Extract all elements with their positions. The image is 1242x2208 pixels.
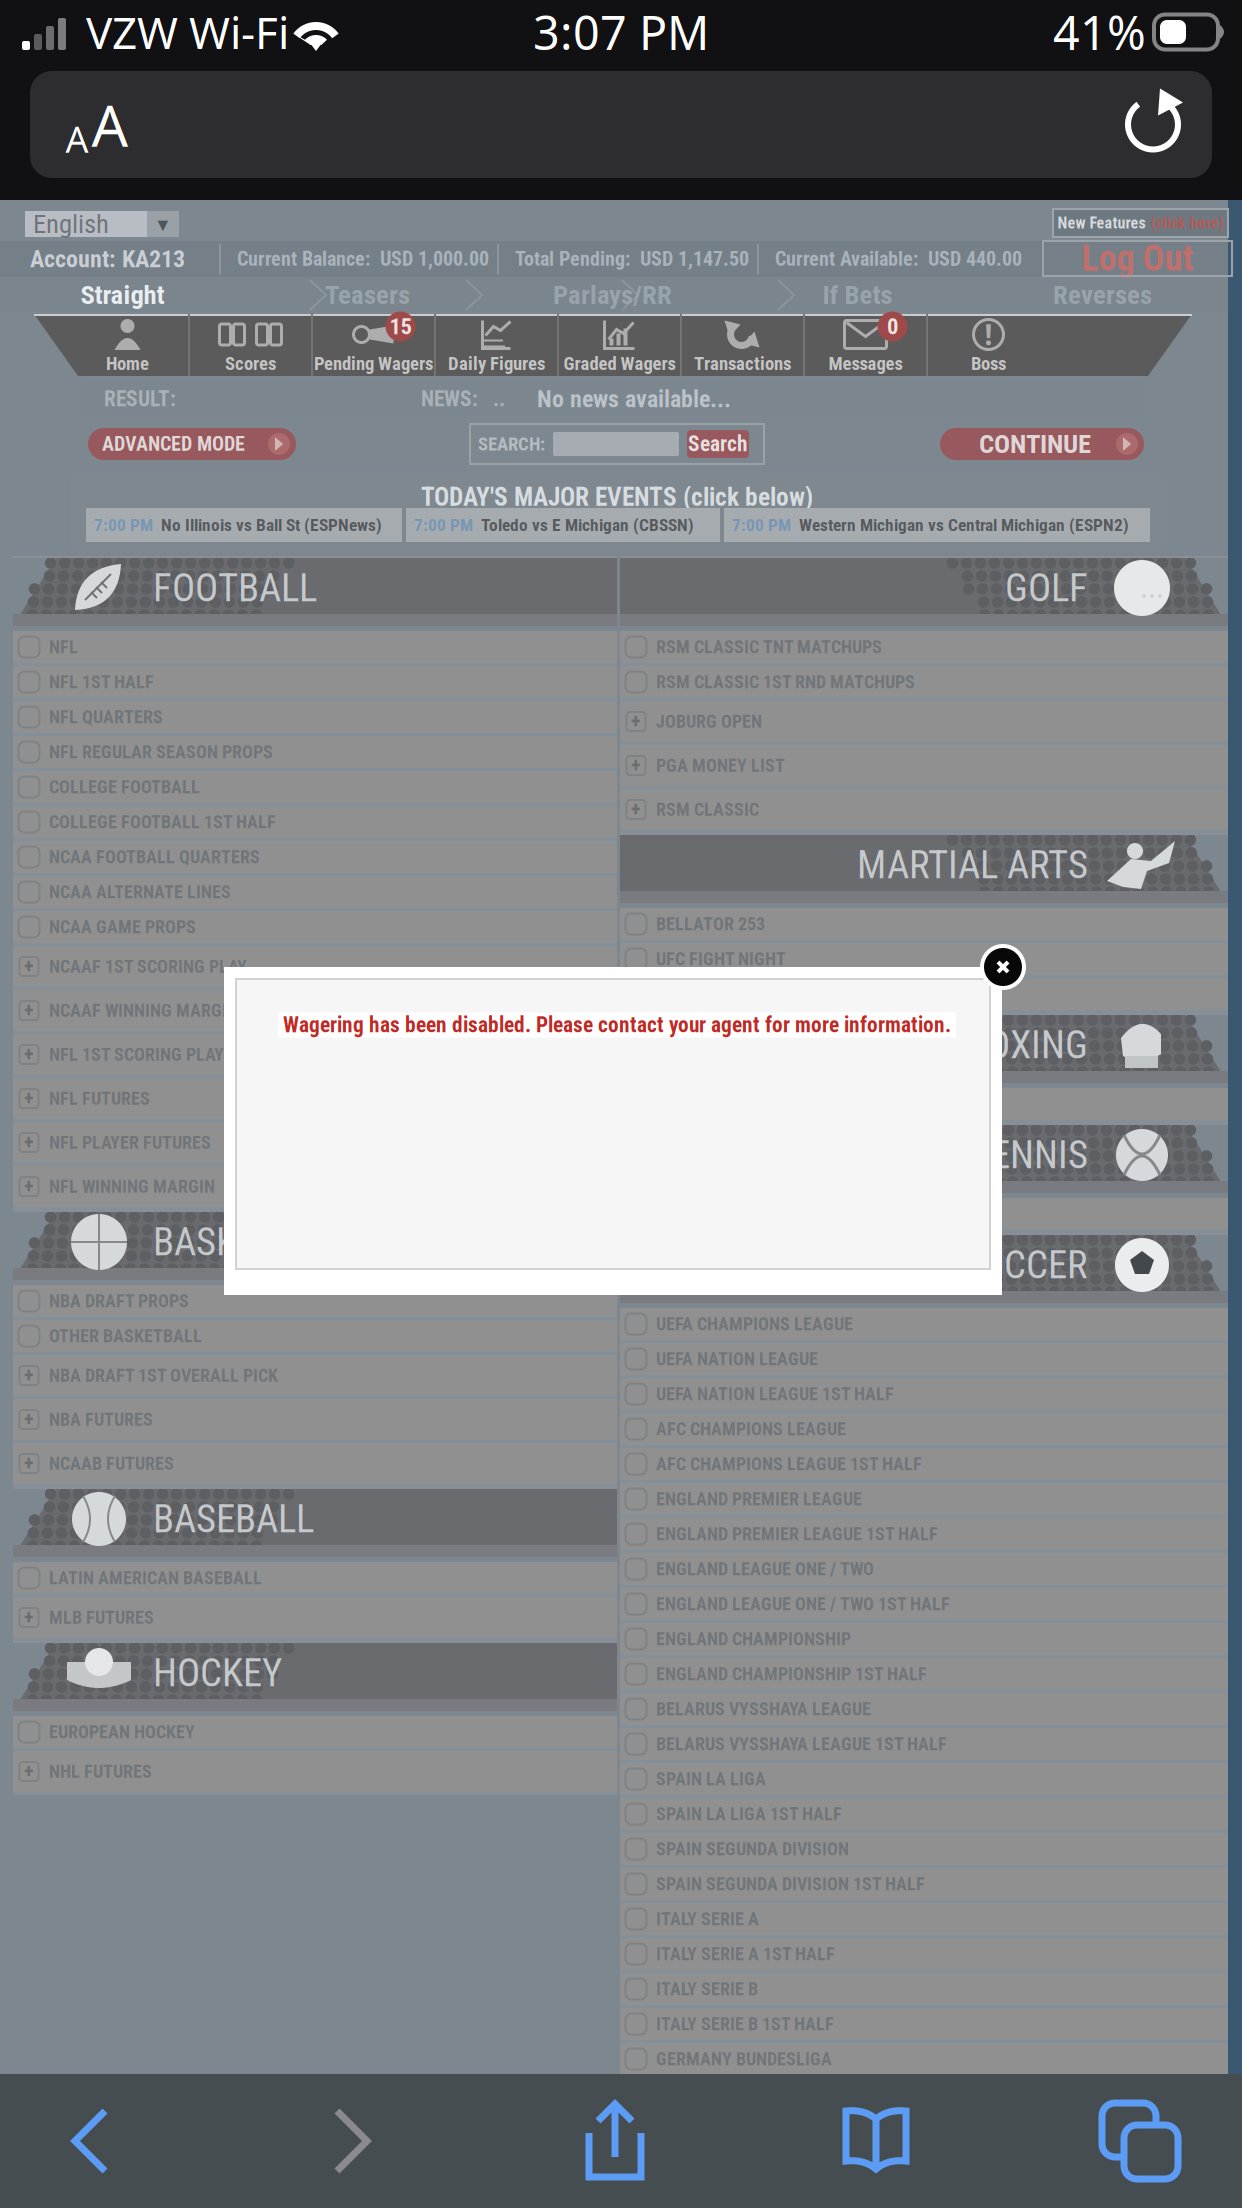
button[interactable]: LATIN AMERICAN BASEBALL <box>13 1562 617 1594</box>
staticText: NFL WINNING MARGIN <box>49 1176 215 1197</box>
button[interactable]: UEFA NATION LEAGUE 1ST HALF <box>620 1378 1228 1410</box>
button[interactable]: Share <box>545 2074 685 2208</box>
button[interactable]: ENGLAND LEAGUE ONE / TWO <box>620 1553 1228 1585</box>
button[interactable]: If Bets <box>735 278 980 312</box>
button[interactable]: NFL 1ST HALF <box>13 666 617 698</box>
button[interactable]: ENGLAND LEAGUE ONE / TWO 1ST HALF <box>620 1588 1228 1620</box>
button[interactable]: ITALY SERIE B <box>620 1973 1228 2005</box>
button[interactable]: UEFA NATION LEAGUE <box>620 1343 1228 1375</box>
staticText: Western Michigan vs Central Michigan (ES… <box>799 515 1129 535</box>
staticText: ENGLAND PREMIER LEAGUE <box>656 1488 862 1510</box>
button[interactable]: OTHER BASKETBALL <box>13 1320 617 1352</box>
button[interactable]: + <box>13 1399 617 1440</box>
button[interactable]: + <box>13 1355 617 1396</box>
button[interactable]: ADVANCED MODE <box>88 428 296 460</box>
button[interactable]: 7:00 PM <box>724 508 1150 542</box>
button[interactable]: NFL QUARTERS <box>13 701 617 733</box>
button[interactable]: NBA DRAFT PROPS <box>13 1285 617 1317</box>
staticText: LATIN AMERICAN BASEBALL <box>49 1567 262 1589</box>
button[interactable]: NCAA ALTERNATE LINES <box>13 876 617 908</box>
button[interactable]: SPAIN SEGUNDA DIVISION 1ST HALF <box>620 1868 1228 1900</box>
button[interactable]: BOXING <box>620 1088 1228 1120</box>
staticText: BASEBALL <box>153 1496 314 1542</box>
button[interactable]: UFC 255 <box>620 978 1228 1010</box>
button[interactable]: + <box>13 1597 617 1638</box>
button[interactable]: UEFA CHAMPIONS LEAGUE <box>620 1308 1228 1340</box>
button[interactable]: BELARUS VYSSHAYA LEAGUE 1ST HALF <box>620 1728 1228 1760</box>
button[interactable]: BELLATOR 253 <box>620 908 1228 940</box>
button[interactable]: Search <box>687 430 749 458</box>
button[interactable]: COLLEGE FOOTBALL 1ST HALF <box>13 806 617 838</box>
button[interactable]: Reverses <box>980 278 1225 312</box>
button[interactable]: AFC CHAMPIONS LEAGUE <box>620 1413 1228 1445</box>
button[interactable]: Tabs <box>1070 2074 1210 2208</box>
button[interactable]: 7:00 PM <box>86 508 402 542</box>
button[interactable]: Daily Figures <box>436 314 557 376</box>
button[interactable]: RSM CLASSIC TNT MATCHUPS <box>620 631 1228 663</box>
button[interactable]: New Features <box>1053 209 1228 237</box>
button[interactable]: RSM CLASSIC 1ST RND MATCHUPS <box>620 666 1228 698</box>
button[interactable]: Scores <box>190 314 311 376</box>
button[interactable]: Parlays/RR <box>490 278 735 312</box>
button[interactable]: ENGLAND CHAMPIONSHIP 1ST HALF <box>620 1658 1228 1690</box>
button[interactable]: 15 <box>313 314 434 376</box>
button[interactable]: AFC CHAMPIONS LEAGUE 1ST HALF <box>620 1448 1228 1480</box>
button[interactable]: + <box>13 1443 617 1484</box>
button[interactable]: Reload <box>1094 71 1212 178</box>
button[interactable]: Log Out <box>1043 241 1232 276</box>
button[interactable]: NCAA GAME PROPS <box>13 911 617 943</box>
button[interactable]: Teasers <box>245 278 490 312</box>
button[interactable]: + <box>13 1751 617 1792</box>
button[interactable]: EUROPEAN HOCKEY <box>13 1716 617 1748</box>
button[interactable]: BELARUS VYSSHAYA LEAGUE <box>620 1693 1228 1725</box>
button[interactable]: + <box>13 1122 617 1163</box>
button[interactable]: NFL <box>13 631 617 663</box>
button[interactable]: + <box>13 1034 617 1075</box>
button[interactable]: ATP TOUR <box>620 1198 1228 1230</box>
staticText: ITALY SERIE B 1ST HALF <box>656 2013 834 2035</box>
button[interactable]: SPAIN SEGUNDA DIVISION <box>620 1833 1228 1865</box>
button[interactable]: Close <box>980 944 1026 990</box>
staticText: COLLEGE FOOTBALL <box>49 776 200 798</box>
staticText: Pending Wagers <box>314 353 433 374</box>
staticText: + <box>24 1087 34 1110</box>
button[interactable]: ITALY SERIE A <box>620 1903 1228 1935</box>
button[interactable]: Back <box>20 2074 160 2208</box>
button[interactable]: Transactions <box>682 314 803 376</box>
button[interactable]: + <box>620 745 1228 786</box>
button[interactable]: COLLEGE FOOTBALL <box>13 771 617 803</box>
button[interactable]: ENGLAND PREMIER LEAGUE <box>620 1483 1228 1515</box>
button[interactable]: Graded Wagers <box>559 314 680 376</box>
staticText: NFL 1ST SCORING PLAY <box>49 1044 224 1065</box>
button[interactable]: SPAIN LA LIGA <box>620 1763 1228 1795</box>
button[interactable]: Forward <box>282 2074 422 2208</box>
button[interactable]: 0 <box>805 314 926 376</box>
staticText: If Bets <box>822 279 892 311</box>
button[interactable]: UFC FIGHT NIGHT <box>620 943 1228 975</box>
button[interactable]: NFL REGULAR SEASON PROPS <box>13 736 617 768</box>
button[interactable]: GERMANY BUNDESLIGA <box>620 2043 1228 2075</box>
button[interactable]: + <box>13 1078 617 1119</box>
button[interactable]: Page settings <box>30 71 164 178</box>
button[interactable]: ENGLAND CHAMPIONSHIP <box>620 1623 1228 1655</box>
button[interactable]: 7:00 PM <box>406 508 720 542</box>
button[interactable]: Home <box>67 314 188 376</box>
button[interactable]: ITALY SERIE B 1ST HALF <box>620 2008 1228 2040</box>
button[interactable]: SPAIN LA LIGA 1ST HALF <box>620 1798 1228 1830</box>
button[interactable]: + <box>13 990 617 1031</box>
staticText: Current Available: USD 440.00 <box>775 247 1022 271</box>
staticText: Scores <box>225 353 276 374</box>
button[interactable]: + <box>620 701 1228 742</box>
button[interactable]: + <box>13 946 617 987</box>
staticText: + <box>631 798 641 821</box>
button[interactable]: CONTINUE <box>940 428 1144 460</box>
button[interactable]: ITALY SERIE A 1ST HALF <box>620 1938 1228 1970</box>
button[interactable]: Straight <box>0 278 245 312</box>
button[interactable]: ENGLAND PREMIER LEAGUE 1ST HALF <box>620 1518 1228 1550</box>
staticText: Home <box>106 353 149 374</box>
button[interactable]: NCAA FOOTBALL QUARTERS <box>13 841 617 873</box>
button[interactable]: + <box>620 789 1228 830</box>
button[interactable]: + <box>13 1166 617 1207</box>
button[interactable]: Bookmarks <box>807 2074 947 2208</box>
button[interactable]: ! <box>928 314 1049 376</box>
